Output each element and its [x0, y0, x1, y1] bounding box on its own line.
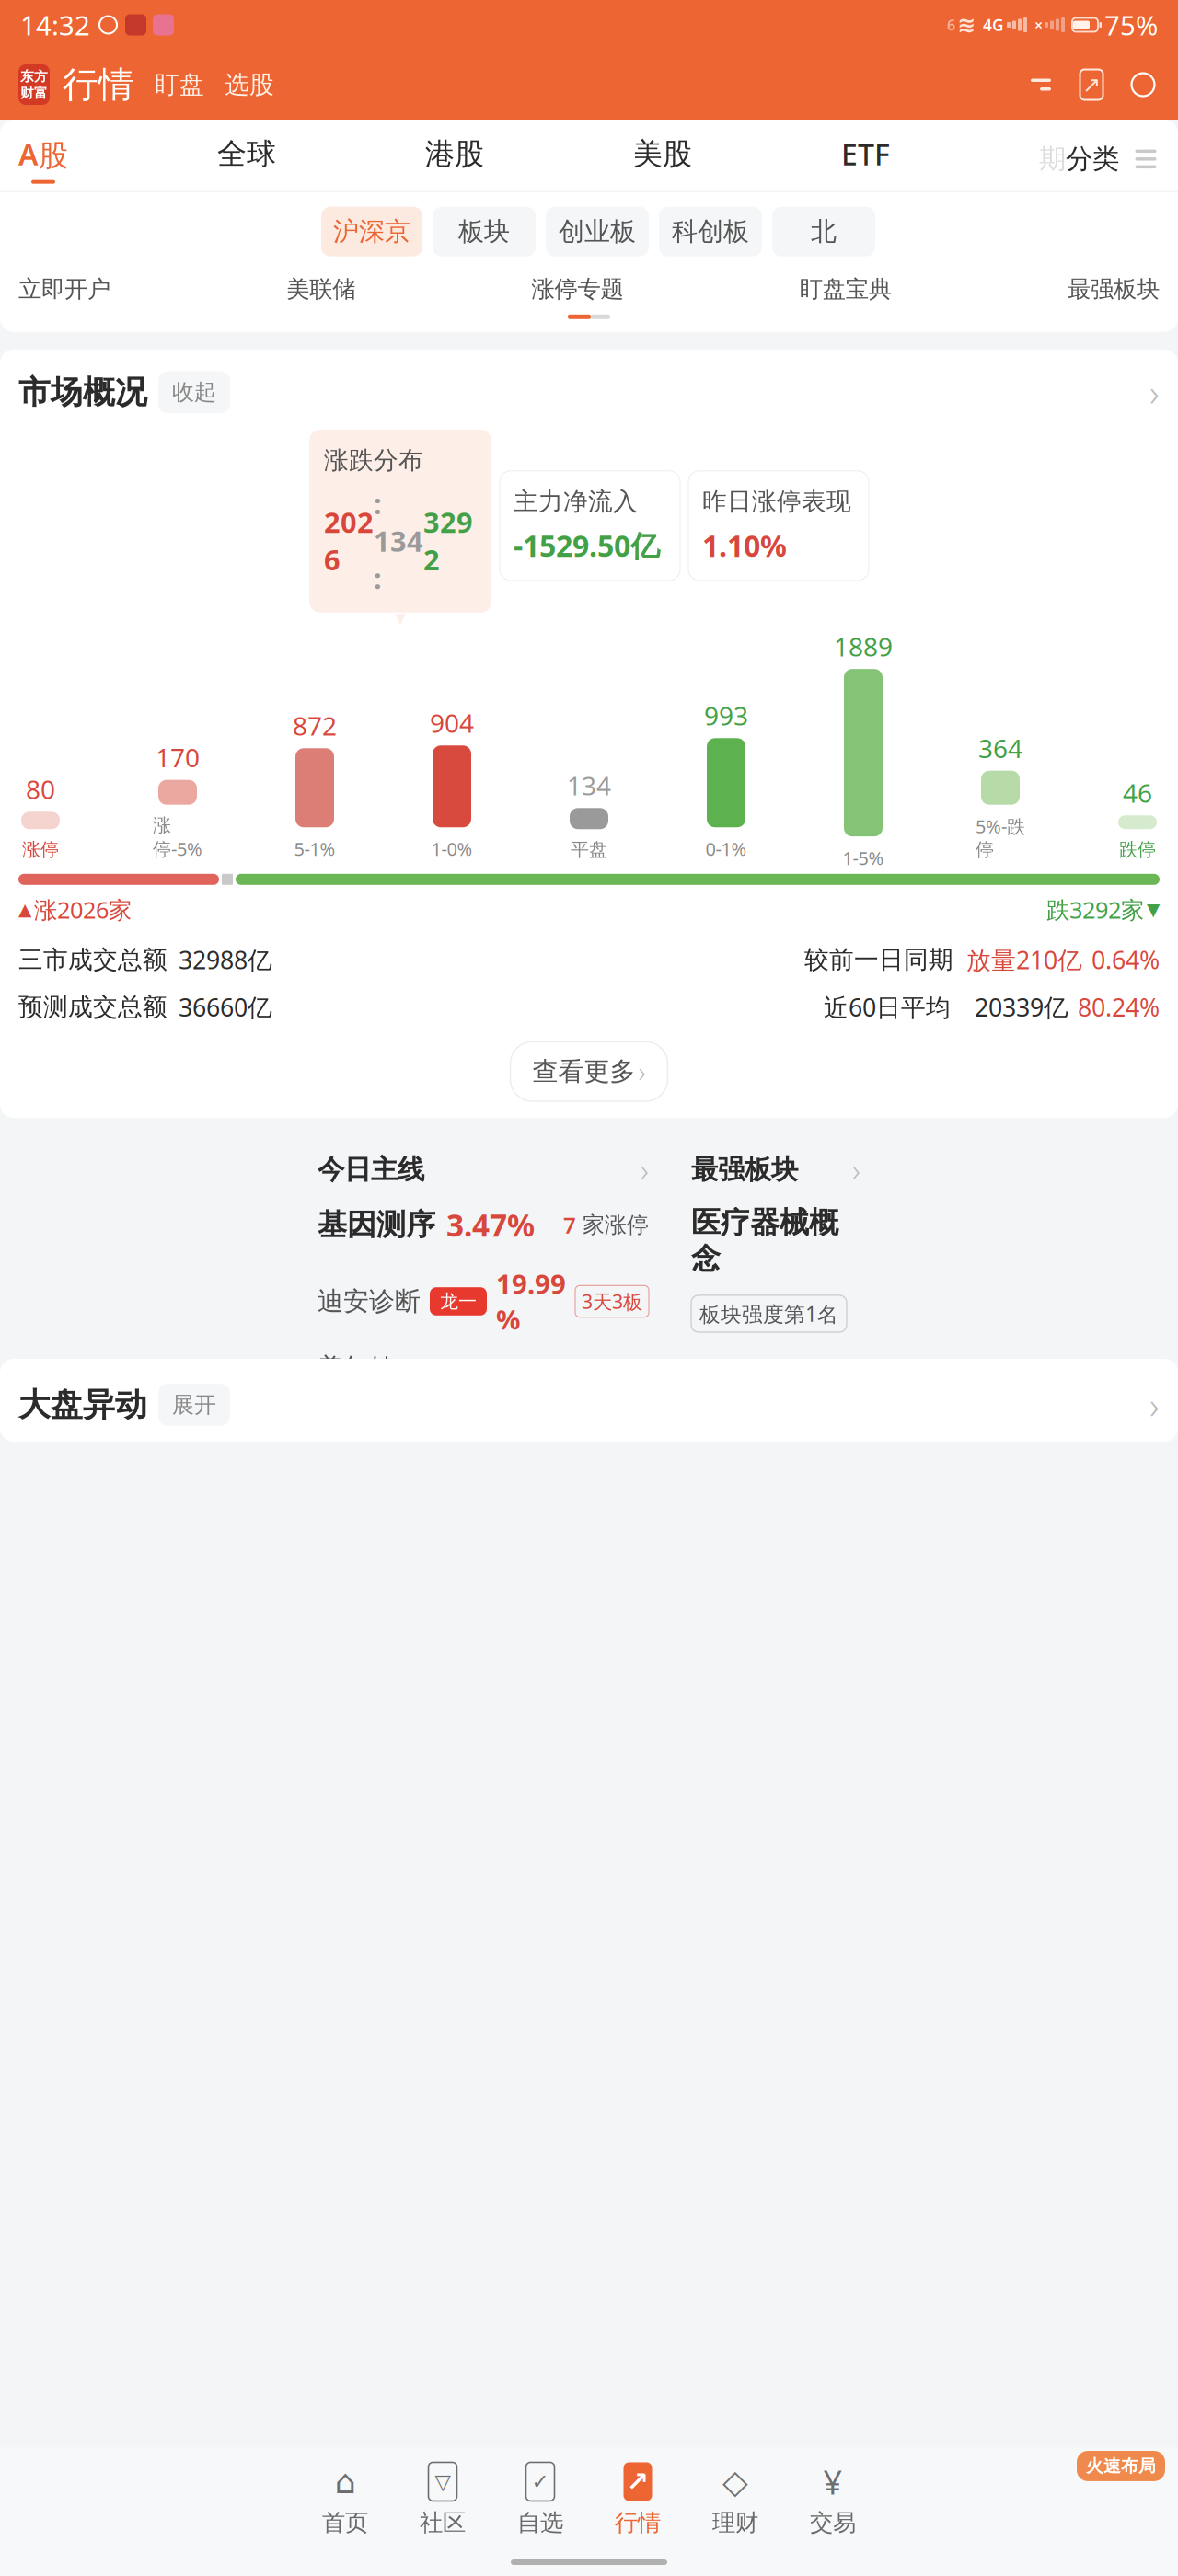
staticText: 盯盘宝典: [800, 275, 892, 303]
staticText: 医疗器械概念: [691, 1205, 838, 1277]
staticText: 展开: [172, 1391, 216, 1418]
staticText: 大盘异动: [18, 1385, 147, 1424]
button[interactable]: 立即开户: [18, 275, 110, 303]
button[interactable]: 搜索: [1126, 66, 1160, 103]
button[interactable]: 盯盘: [155, 70, 204, 100]
button[interactable]: ETF: [841, 134, 890, 184]
staticText: 盯盘: [155, 70, 204, 100]
button[interactable]: 市场概况: [0, 368, 1178, 417]
staticText: 14:32: [20, 7, 90, 43]
button[interactable]: 美股: [633, 136, 692, 182]
staticText: 行情: [615, 2508, 661, 2537]
button[interactable]: 期: [1039, 142, 1119, 176]
staticText: 交易: [810, 2508, 856, 2537]
button[interactable]: 板块: [433, 207, 536, 256]
staticText: 龙一: [440, 1290, 477, 1313]
staticText: A股: [18, 134, 68, 174]
staticText: 1.10%: [702, 526, 787, 565]
button[interactable]: 北: [772, 207, 875, 256]
button[interactable]: ↗: [589, 2462, 687, 2537]
staticText: 32988亿: [179, 943, 272, 976]
button[interactable]: 分享: [1075, 66, 1108, 103]
staticText: ⌂: [335, 2463, 356, 2500]
staticText: 立即开户: [18, 275, 110, 303]
button[interactable]: 查看更多: [510, 1042, 668, 1101]
staticText: 19.99%: [496, 1265, 566, 1337]
staticText: 东方: [20, 68, 48, 85]
staticText: 最强板块: [691, 1153, 798, 1186]
staticText: 家涨停: [576, 1211, 649, 1239]
staticText: 涨停-5%: [153, 814, 202, 861]
staticText: 财富: [20, 85, 48, 101]
button[interactable]: 大盘异动: [0, 1380, 1178, 1429]
button[interactable]: 设置: [1025, 66, 1057, 103]
staticText: 3.47%: [446, 1205, 535, 1245]
staticText: 0-1%: [705, 837, 747, 861]
staticText: ≋: [957, 12, 976, 37]
button[interactable]: 主力净流入: [500, 471, 680, 580]
button[interactable]: 涨停专题: [531, 275, 624, 303]
staticText: 1889: [834, 629, 893, 664]
button[interactable]: ◇: [687, 2462, 784, 2537]
staticText: 收起: [172, 379, 216, 406]
staticText: 科创板: [672, 216, 749, 247]
staticText: 2026: [324, 503, 374, 578]
staticText: 北: [811, 216, 837, 247]
staticText: ▾: [395, 605, 406, 630]
staticText: 涨停专题: [531, 275, 624, 303]
staticText: 火速布局: [1086, 2455, 1156, 2477]
button[interactable]: 最强板块: [1068, 275, 1160, 303]
staticText: 9.94%: [778, 1351, 836, 1425]
button[interactable]: 全球: [217, 136, 276, 182]
staticText: 选股: [225, 70, 274, 100]
staticText: 平盘: [571, 838, 607, 861]
staticText: 美联储: [286, 275, 355, 303]
button[interactable]: 盯盘宝典: [800, 275, 892, 303]
staticText: ¥: [823, 2460, 843, 2504]
staticText: :134:: [374, 484, 423, 597]
staticText: 904: [430, 706, 474, 740]
staticText: 社区: [420, 2508, 466, 2537]
staticText: 迪安诊断: [318, 1286, 421, 1317]
staticText: 板块强度第1名: [699, 1300, 838, 1328]
button[interactable]: ¥: [784, 2462, 882, 2537]
button[interactable]: 行情: [63, 63, 134, 107]
staticText: ×: [1034, 15, 1043, 35]
staticText: 查看更多: [532, 1056, 635, 1087]
staticText: 6: [947, 15, 955, 35]
staticText: 昨日涨停表现: [702, 486, 851, 517]
button[interactable]: 东方财富: [18, 64, 50, 105]
button[interactable]: 港股: [425, 136, 484, 182]
button[interactable]: 沪深京: [321, 207, 422, 256]
staticText: 自选: [517, 2508, 563, 2537]
button[interactable]: 今日主线: [301, 1133, 665, 1342]
staticText: 首页: [322, 2508, 368, 2537]
button[interactable]: 涨跌分布: [309, 430, 491, 622]
staticText: 最强板块: [1068, 275, 1160, 303]
staticText: 993: [704, 698, 748, 733]
button[interactable]: 选股: [225, 70, 274, 100]
staticText: 美年健康: [318, 1352, 395, 1415]
button[interactable]: 最强板块: [675, 1133, 877, 1342]
button[interactable]: 创业板: [546, 207, 649, 256]
staticText: 理财: [712, 2508, 758, 2537]
staticText: 主力净流入: [514, 486, 638, 517]
button[interactable]: A股: [18, 134, 68, 184]
staticText: 分类: [1066, 142, 1119, 176]
staticText: 美股: [633, 136, 692, 172]
staticText: ›: [1149, 368, 1160, 417]
button[interactable]: ✓: [491, 2462, 589, 2537]
staticText: 75%: [1104, 7, 1158, 43]
staticText: 5%-跌停: [976, 814, 1025, 861]
button[interactable]: 美联储: [286, 275, 355, 303]
button[interactable]: ▽: [394, 2462, 491, 2537]
staticText: -1529.50亿: [514, 526, 660, 565]
staticText: 市场概况: [18, 373, 147, 412]
staticText: 46: [1123, 776, 1152, 810]
button[interactable]: 昨日涨停表现: [688, 471, 869, 580]
button[interactable]: 科创板: [659, 207, 762, 256]
staticText: 36660亿: [179, 991, 272, 1023]
button[interactable]: ⌂: [296, 2462, 394, 2537]
button[interactable]: 全部分类: [1132, 144, 1160, 174]
